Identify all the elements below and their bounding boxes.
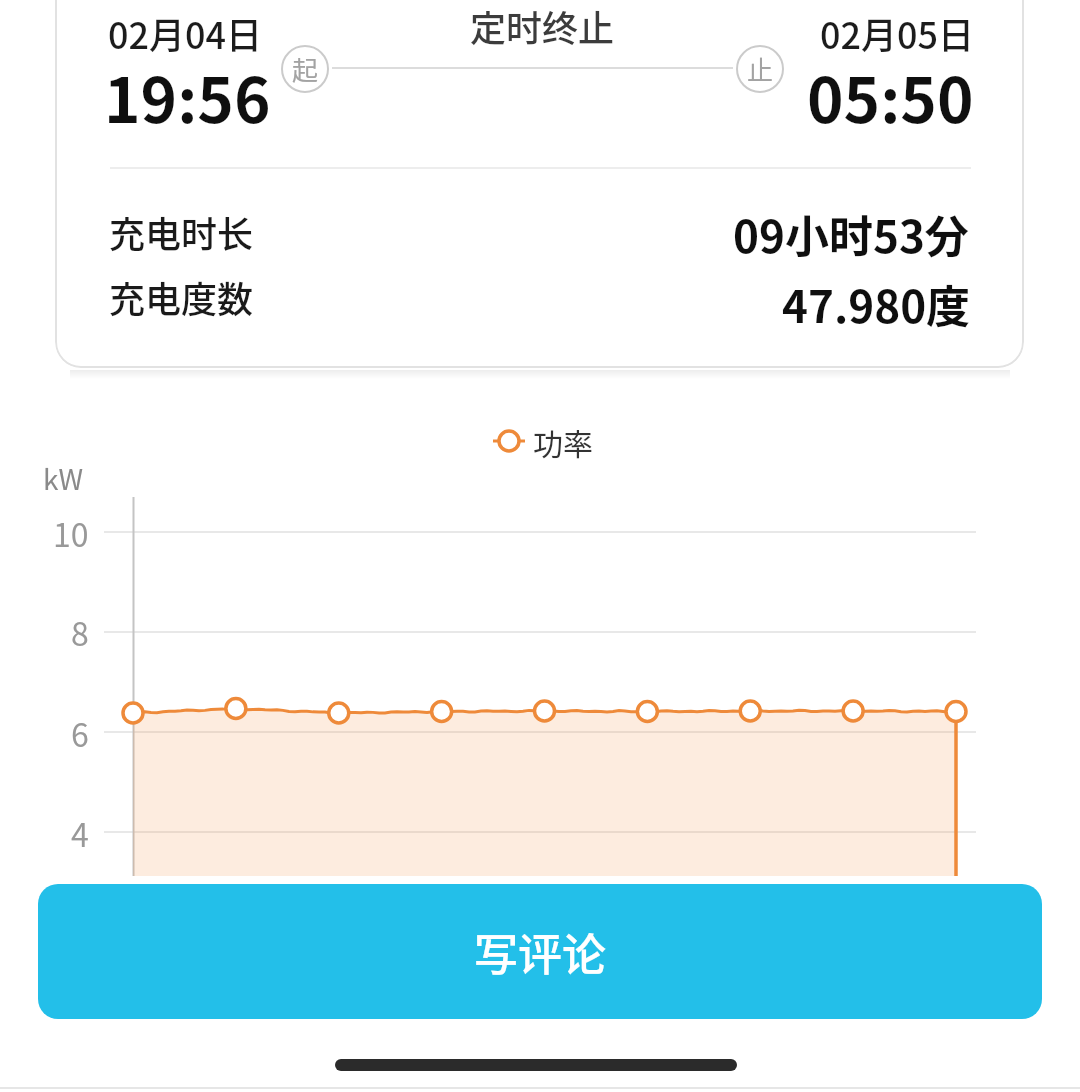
staticText: kW: [43, 458, 84, 499]
staticText: 09小时53分: [733, 202, 969, 266]
staticText: 充电时长: [109, 206, 254, 258]
staticText: 4: [71, 810, 89, 856]
staticText: 02月04日: [108, 7, 263, 59]
staticText: 05:50: [807, 51, 974, 141]
staticText: 起: [292, 50, 319, 88]
staticText: 定时终止: [470, 0, 615, 52]
staticText: 充电度数: [109, 271, 254, 323]
staticText: 写评论: [474, 920, 606, 984]
staticText: 6: [71, 710, 89, 756]
staticText: 功率: [533, 420, 593, 463]
staticText: 10: [53, 510, 89, 556]
staticText: 47.980度: [782, 272, 971, 336]
staticText: 止: [747, 50, 774, 88]
button[interactable]: 写评论: [38, 884, 1042, 1019]
staticText: 02月05日: [820, 7, 975, 59]
staticText: 8: [71, 609, 89, 655]
staticText: 19:56: [104, 51, 271, 141]
